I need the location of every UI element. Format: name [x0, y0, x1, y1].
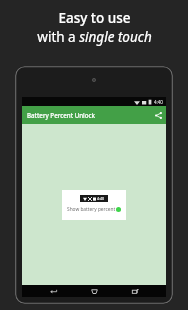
button[interactable]: Back [43, 285, 63, 297]
button[interactable]: 4:40 [62, 190, 126, 220]
button[interactable]: Show battery percent [67, 206, 121, 213]
button[interactable]: Home [84, 285, 104, 297]
staticText: Battery Percent Unlock [27, 111, 96, 119]
button[interactable]: Recent apps [125, 285, 145, 297]
button[interactable]: Share [150, 107, 166, 123]
staticText: Show battery percent [67, 206, 116, 213]
staticText: 4:40 [97, 196, 105, 201]
staticText: with a single touch [37, 28, 152, 46]
staticText: 4:40 [154, 99, 163, 105]
staticText: Easy to use [58, 9, 131, 27]
